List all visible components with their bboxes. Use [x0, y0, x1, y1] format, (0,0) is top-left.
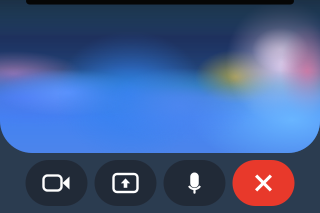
- button[interactable]: Mute: [163, 160, 225, 206]
- button[interactable]: Camera: [25, 160, 87, 206]
- button[interactable]: End Call: [232, 160, 294, 206]
- button[interactable]: Share Screen: [94, 160, 156, 206]
